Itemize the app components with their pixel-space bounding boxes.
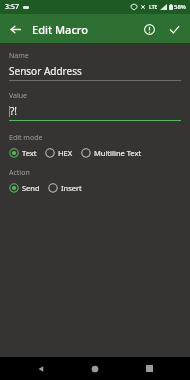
button[interactable]: Back (5, 19, 25, 39)
button[interactable]: Back (28, 357, 54, 380)
staticText: Send (22, 183, 40, 193)
staticText: Edit mode (9, 133, 43, 143)
button[interactable]: Recent apps (136, 357, 162, 380)
button[interactable]: Send (9, 180, 40, 196)
staticText: HEX (58, 148, 73, 158)
button[interactable]: Home (82, 357, 108, 380)
staticText: 58% (174, 3, 186, 11)
button[interactable]: HEX (45, 145, 73, 161)
button[interactable]: Multiline Text (81, 145, 142, 161)
button[interactable]: Insert (48, 180, 82, 196)
button[interactable]: Save (163, 18, 185, 40)
button[interactable]: Text (9, 145, 37, 161)
staticText: Insert (61, 183, 82, 193)
staticText: 3:57 (5, 2, 19, 12)
staticText: Text (22, 148, 37, 158)
staticText: Action (9, 168, 30, 178)
staticText: LTE (149, 4, 158, 11)
staticText: Name (9, 51, 29, 61)
staticText: Multiline Text (94, 148, 142, 158)
staticText: Edit Macro (32, 22, 88, 37)
button[interactable]: Info (138, 18, 160, 40)
staticText: Sensor Address (9, 64, 82, 78)
button[interactable]: ?! (9, 104, 181, 121)
staticText: ?! (10, 104, 18, 118)
button[interactable]: Sensor Address (9, 64, 181, 81)
staticText: Value (9, 91, 28, 101)
